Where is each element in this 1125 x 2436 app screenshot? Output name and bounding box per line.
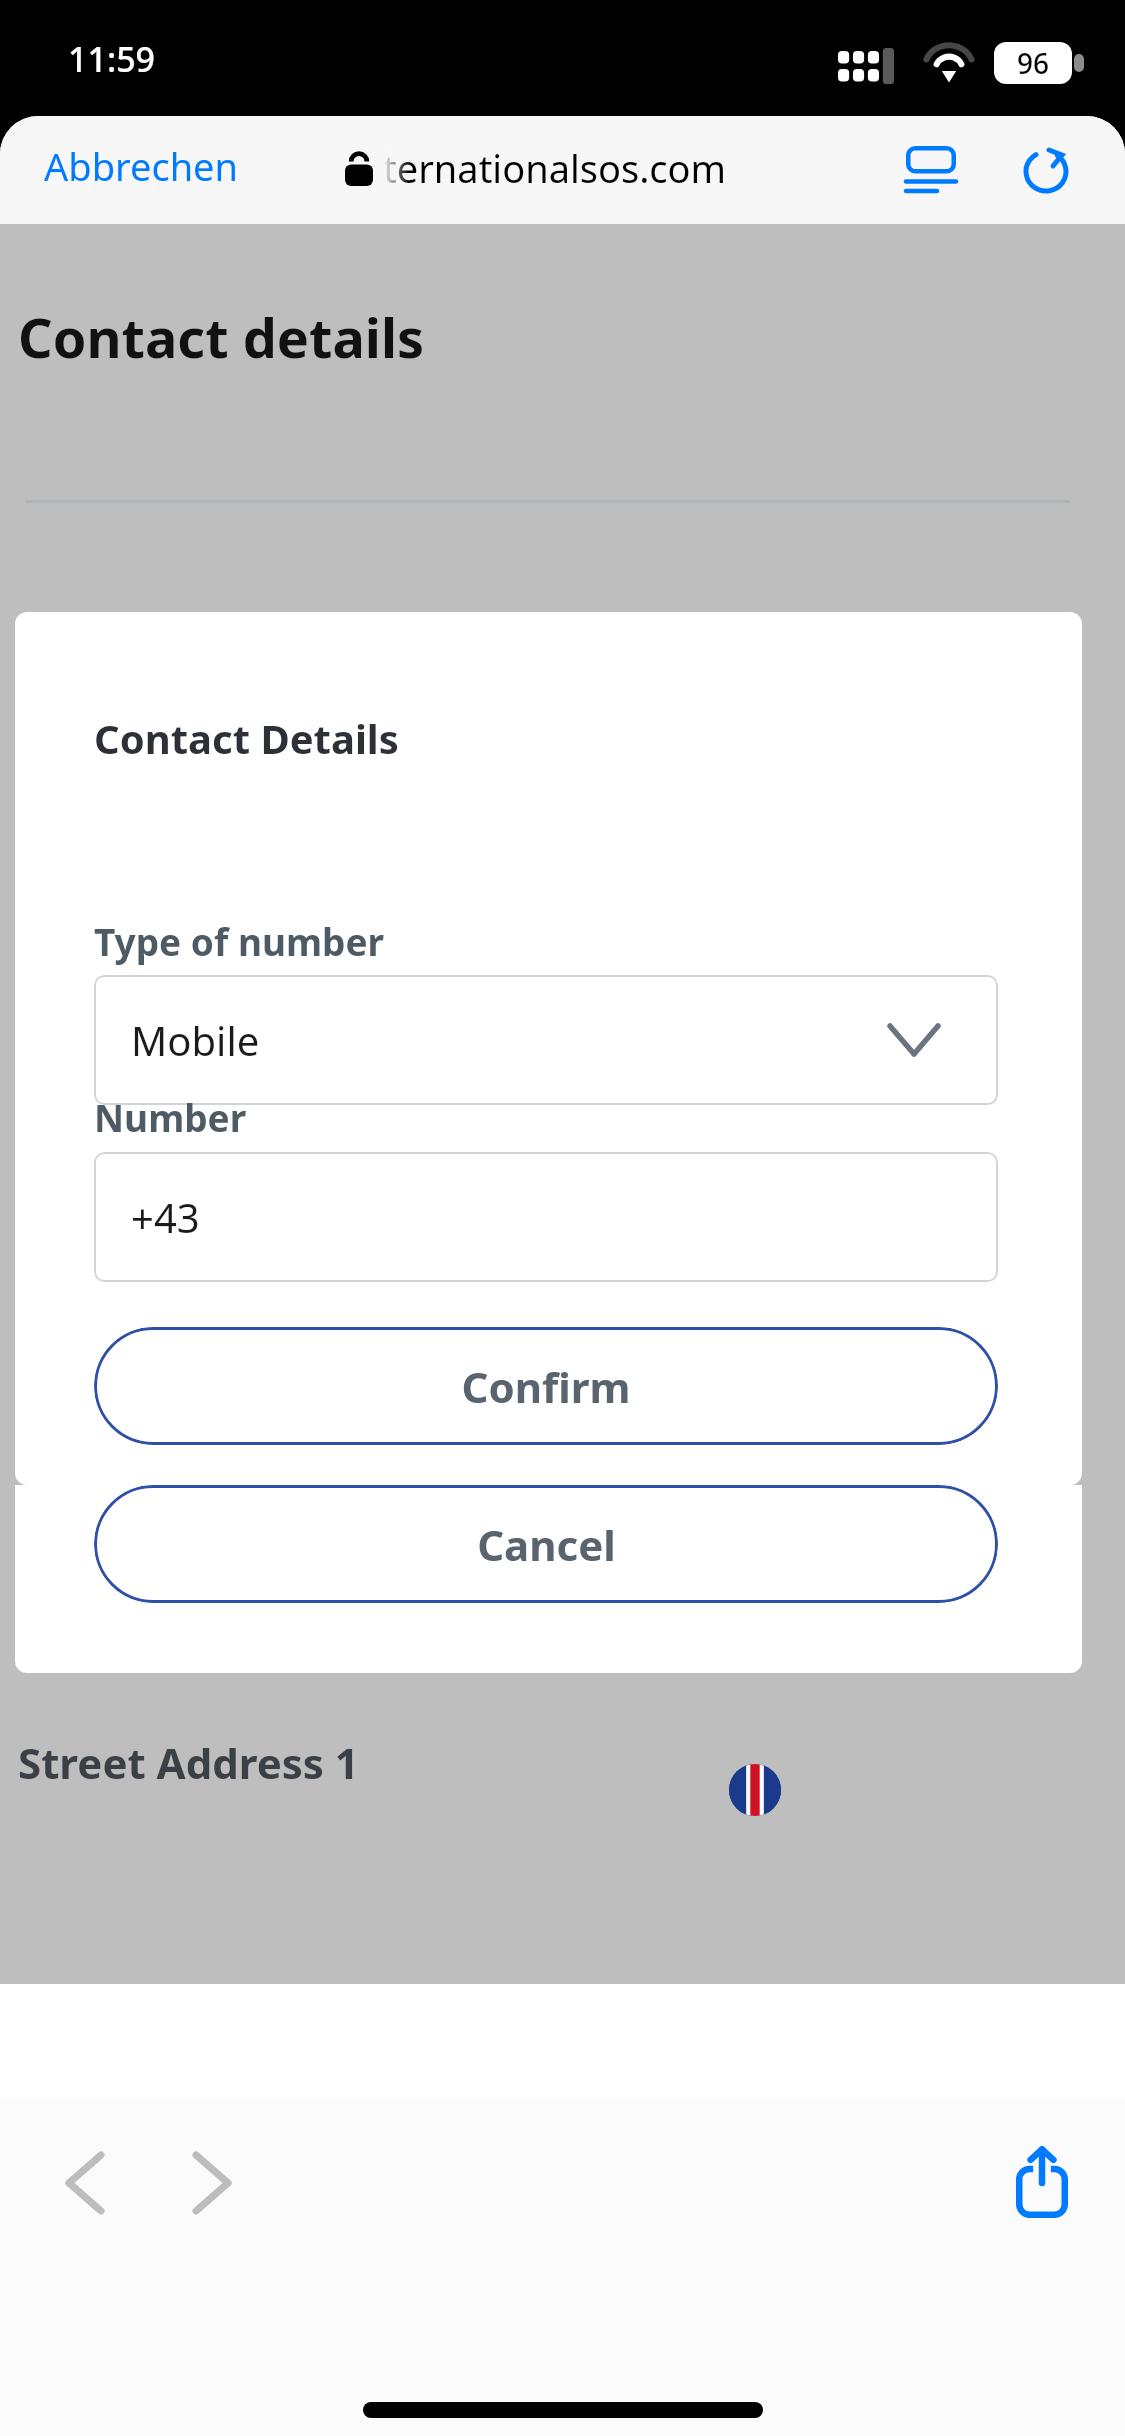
staticText: +43 <box>131 1190 200 1244</box>
staticText: Type of number <box>94 916 385 966</box>
button[interactable]: Back <box>30 2128 140 2238</box>
button[interactable]: Abbrechen <box>30 130 253 202</box>
staticText: 11:59 <box>68 36 156 82</box>
button[interactable]: Reload <box>1010 134 1082 206</box>
staticText: Number <box>94 1092 247 1142</box>
button[interactable]: Cancel <box>94 1485 998 1603</box>
staticText: Abbrechen <box>44 140 239 192</box>
staticText: 96 <box>1017 44 1050 82</box>
staticText: Contact Details <box>94 711 399 765</box>
button[interactable]: Reader view <box>895 134 967 206</box>
staticText: Mobile <box>131 1013 260 1067</box>
staticText: Confirm <box>461 1358 631 1415</box>
staticText: ternationalsos.com <box>383 142 727 194</box>
button[interactable]: Forward <box>157 2128 267 2238</box>
staticText: Cancel <box>477 1516 616 1573</box>
button[interactable]: ternationalsos.com <box>345 142 727 194</box>
button[interactable]: Share <box>987 2128 1097 2238</box>
staticText: Street Address 1 <box>18 1734 359 1791</box>
staticText: Contact details <box>18 300 425 374</box>
button[interactable]: Confirm <box>94 1327 998 1445</box>
button[interactable]: Mobile <box>94 975 998 1105</box>
button[interactable]: +43 <box>94 1152 998 1282</box>
